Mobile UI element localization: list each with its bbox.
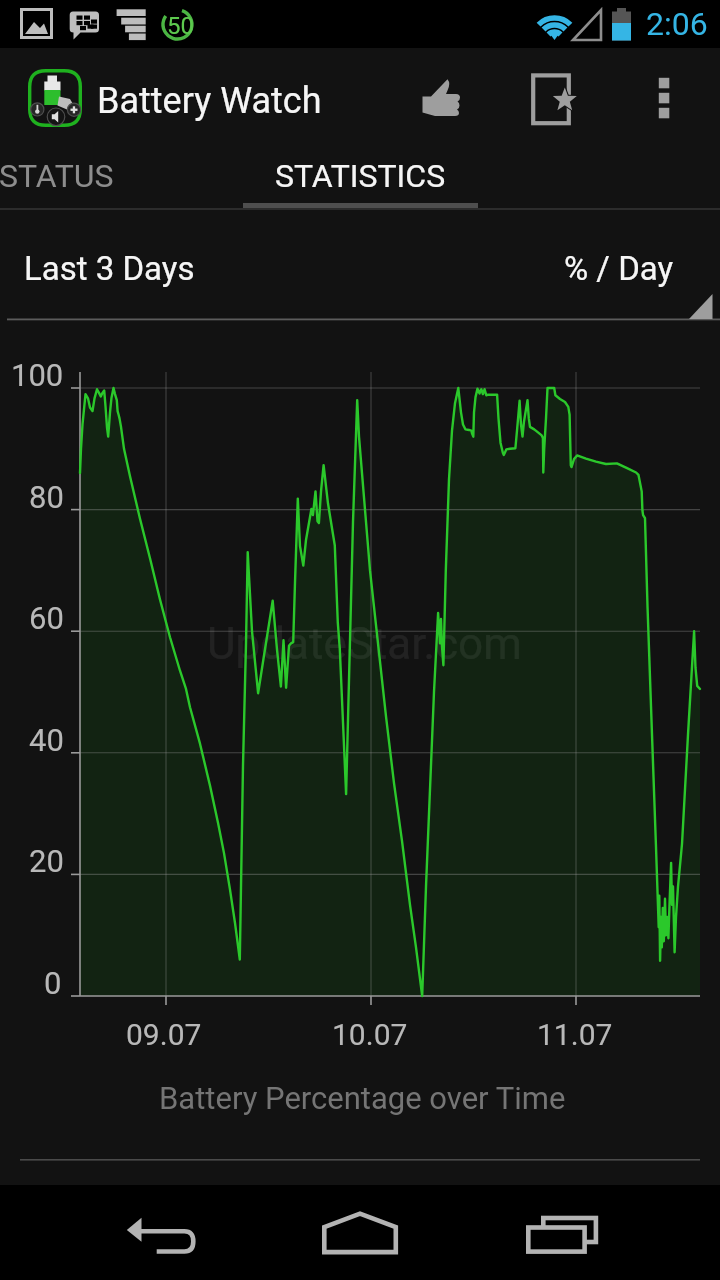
button[interactable]: STATISTICS bbox=[243, 144, 478, 210]
button[interactable]: Like bbox=[392, 48, 488, 144]
button[interactable]: Home bbox=[240, 1185, 480, 1280]
button[interactable]: Last 3 Days bbox=[0, 212, 720, 322]
staticText: 09.07 bbox=[126, 1017, 202, 1052]
staticText: 40 bbox=[29, 722, 64, 758]
button[interactable]: More options bbox=[616, 48, 712, 144]
staticText: 2:06 bbox=[646, 5, 708, 43]
button[interactable]: Rate this app bbox=[504, 48, 600, 144]
staticText: % / Day bbox=[564, 249, 674, 288]
staticText: STATUS bbox=[0, 157, 114, 195]
staticText: 100 bbox=[11, 357, 64, 393]
button[interactable]: STATUS bbox=[0, 144, 114, 206]
staticText: 20 bbox=[29, 843, 64, 879]
staticText: UpdateStar.com bbox=[207, 618, 522, 670]
staticText: 50 bbox=[167, 12, 194, 40]
button[interactable]: Recent apps bbox=[480, 1185, 720, 1280]
staticText: Battery Watch bbox=[97, 80, 322, 122]
staticText: 60 bbox=[29, 600, 64, 636]
staticText: 80 bbox=[29, 479, 64, 515]
staticText: Last 3 Days bbox=[24, 249, 195, 288]
staticText: STATISTICS bbox=[275, 157, 446, 195]
staticText: 0 bbox=[44, 965, 62, 1001]
staticText: 10.07 bbox=[332, 1017, 408, 1052]
staticText: 11.07 bbox=[537, 1017, 613, 1052]
staticText: Battery Percentage over Time bbox=[159, 1080, 566, 1116]
button[interactable]: Back bbox=[0, 1185, 240, 1280]
